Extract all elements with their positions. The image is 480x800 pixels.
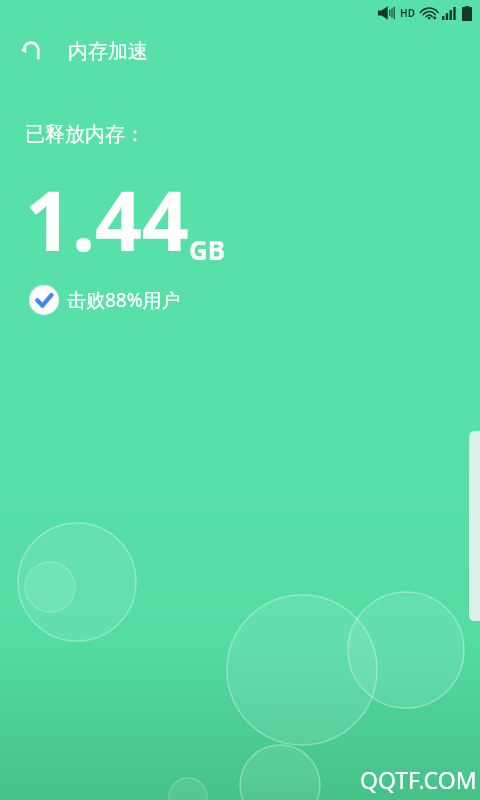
staticText: HD — [400, 6, 415, 20]
staticText: 已释放内存： — [25, 122, 145, 147]
staticText: QQTF.COM — [360, 764, 477, 795]
staticText: GB — [189, 232, 226, 267]
staticText: 击败88%用户 — [67, 287, 181, 313]
button[interactable]: Back — [10, 32, 54, 70]
staticText: 内存加速 — [68, 39, 148, 64]
staticText: 1.44 — [25, 163, 189, 275]
